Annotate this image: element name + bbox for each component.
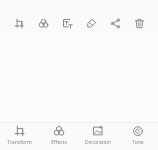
staticText: Decoration: [85, 139, 111, 146]
button[interactable]: Effects: [39, 123, 78, 148]
staticText: Effects: [51, 139, 67, 146]
staticText: Tone: [132, 139, 144, 146]
button[interactable]: Share: [104, 12, 126, 34]
button[interactable]: Decoration: [78, 123, 118, 148]
button[interactable]: Delete: [128, 12, 150, 34]
button[interactable]: Add text: [56, 12, 78, 34]
button[interactable]: Tone: [118, 123, 158, 148]
button[interactable]: Brush: [80, 12, 102, 34]
button[interactable]: Crop: [8, 12, 30, 34]
button[interactable]: Transform: [0, 123, 39, 148]
button[interactable]: Effects: [32, 12, 54, 34]
staticText: Transform: [7, 139, 32, 146]
